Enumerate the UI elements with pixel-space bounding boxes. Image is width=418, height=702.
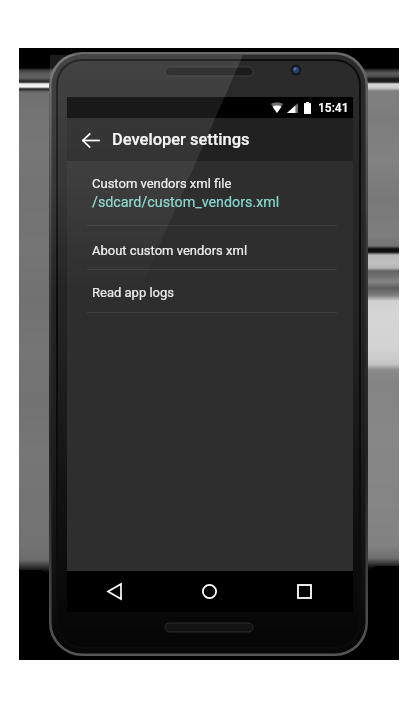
button[interactable]: Home [162,571,257,612]
staticText: About custom vendors xml [92,243,248,258]
staticText: /sdcard/custom_vendors.xml [92,194,280,211]
button[interactable]: Read app logs [67,270,353,312]
staticText: Developer settings [112,130,250,149]
button[interactable]: Navigate up [73,123,107,157]
staticText: Custom vendors xml file [92,176,232,191]
staticText: 15:41 [318,101,349,115]
button[interactable]: Back [67,571,162,612]
button[interactable]: Recent apps [257,571,352,612]
button[interactable]: Custom vendors xml file [67,161,353,225]
button[interactable]: About custom vendors xml [67,226,353,269]
staticText: Read app logs [92,285,175,300]
